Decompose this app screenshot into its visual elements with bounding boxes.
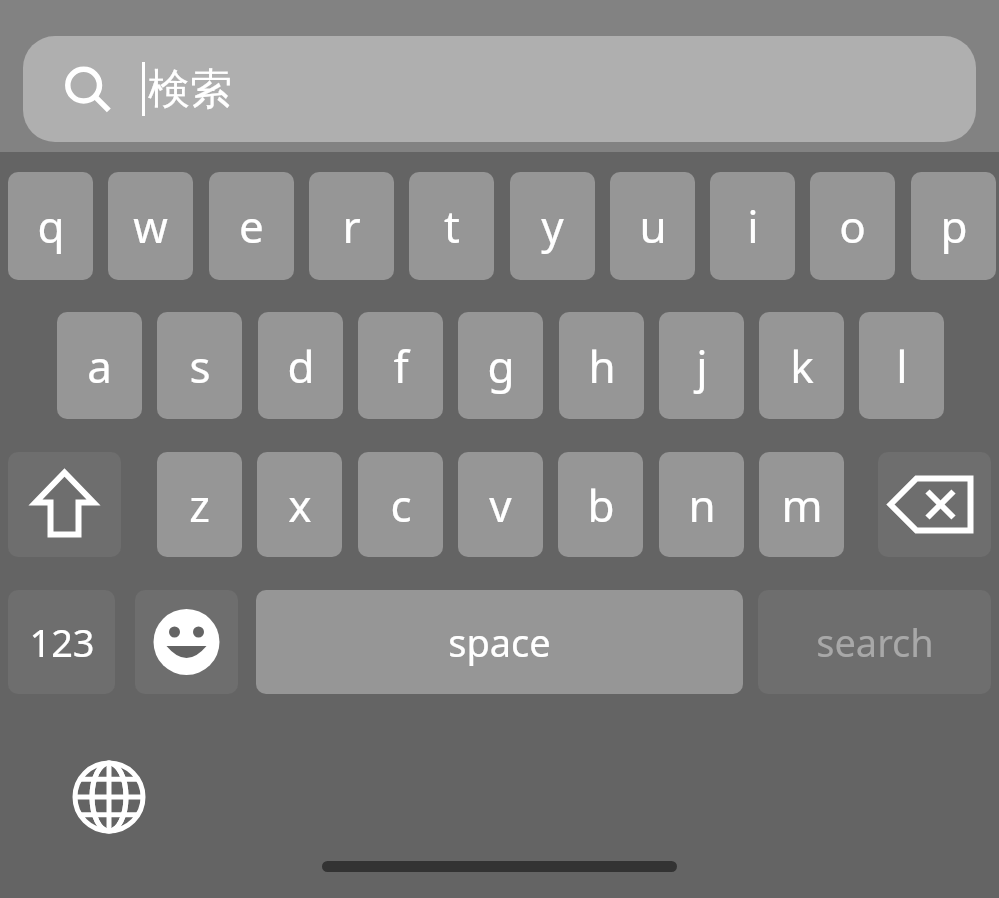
button[interactable]: l (859, 312, 944, 419)
staticText: space (448, 616, 551, 668)
button[interactable]: u (610, 172, 695, 280)
staticText: e (239, 196, 264, 256)
button[interactable]: d (258, 312, 343, 419)
button[interactable]: 123 (8, 590, 115, 694)
button[interactable]: Emoji (135, 590, 238, 694)
staticText: m (781, 475, 823, 535)
button[interactable]: k (759, 312, 844, 419)
button[interactable]: i (710, 172, 795, 280)
button[interactable]: q (8, 172, 93, 280)
staticText: p (940, 196, 968, 256)
staticText: c (390, 475, 412, 535)
staticText: search (816, 616, 934, 668)
button[interactable]: o (810, 172, 895, 280)
button[interactable]: Search (23, 36, 976, 142)
button[interactable]: z (157, 452, 242, 557)
button[interactable]: j (659, 312, 744, 419)
button[interactable]: v (458, 452, 543, 557)
button[interactable]: n (659, 452, 744, 557)
button[interactable]: t (409, 172, 494, 280)
button[interactable]: w (108, 172, 193, 280)
button[interactable]: a (57, 312, 142, 419)
staticText: 123 (29, 616, 95, 668)
staticText: k (790, 336, 814, 396)
staticText: x (288, 475, 312, 535)
button[interactable]: b (558, 452, 643, 557)
staticText: 検索 (148, 63, 232, 116)
button[interactable]: Shift (8, 452, 121, 557)
staticText: r (342, 196, 361, 256)
staticText: o (839, 196, 866, 256)
staticText: g (487, 336, 515, 396)
staticText: n (688, 475, 716, 535)
staticText: w (133, 196, 168, 256)
staticText: h (588, 336, 616, 396)
staticText: f (393, 336, 409, 396)
button[interactable]: x (257, 452, 342, 557)
staticText: t (444, 196, 460, 256)
button[interactable]: y (510, 172, 595, 280)
staticText: b (587, 475, 615, 535)
button[interactable]: search (758, 590, 991, 694)
staticText: z (189, 475, 210, 535)
staticText: a (87, 336, 112, 396)
button[interactable]: g (458, 312, 543, 419)
staticText: d (287, 336, 315, 396)
staticText: u (639, 196, 667, 256)
staticText: j (696, 336, 708, 396)
button[interactable]: e (209, 172, 294, 280)
other: Search (63, 65, 111, 113)
button[interactable]: Backspace (878, 452, 991, 557)
staticText: i (747, 196, 759, 256)
button[interactable]: s (157, 312, 242, 419)
staticText: q (37, 196, 65, 256)
button[interactable]: h (559, 312, 644, 419)
button[interactable]: p (911, 172, 996, 280)
staticText: s (189, 336, 211, 396)
button[interactable]: Change keyboard (72, 760, 146, 834)
staticText: y (541, 196, 564, 256)
button[interactable]: f (358, 312, 443, 419)
button[interactable]: m (759, 452, 844, 557)
button[interactable]: c (358, 452, 443, 557)
button[interactable]: r (309, 172, 394, 280)
staticText: l (896, 336, 908, 396)
button[interactable]: space (256, 590, 743, 694)
staticText: v (489, 475, 512, 535)
